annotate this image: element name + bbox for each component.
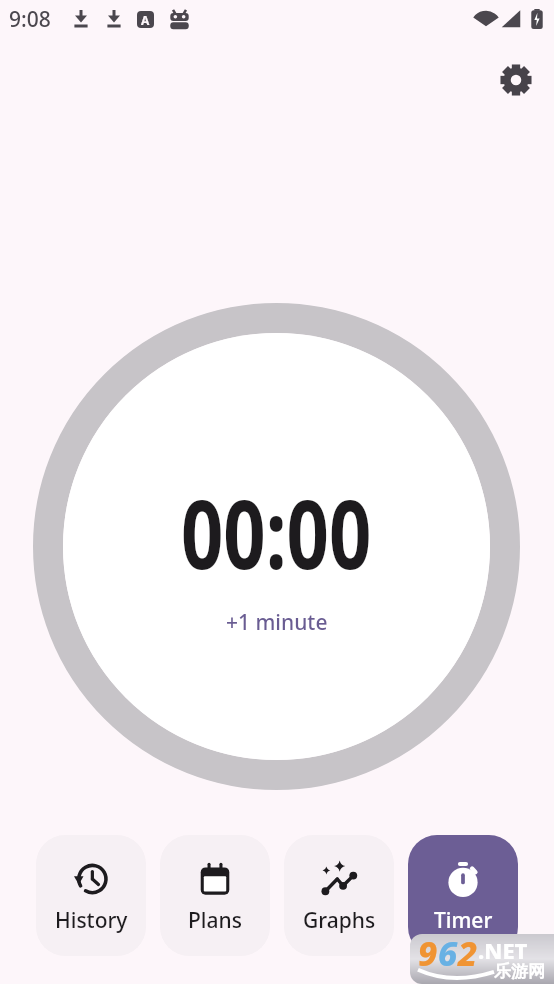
staticText: .NET [478, 935, 528, 965]
staticText: 乐游网 [494, 961, 545, 982]
staticText: 00:00 [181, 467, 372, 596]
staticText: +1 minute [226, 608, 328, 637]
button[interactable]: Plans [160, 835, 270, 956]
staticText: History [55, 906, 128, 935]
button[interactable] [498, 62, 534, 98]
staticText: Timer [434, 906, 493, 935]
staticText: 2 [458, 934, 478, 976]
staticText: A [141, 12, 150, 28]
button[interactable]: Timer [408, 835, 518, 956]
button[interactable]: +1 minute [216, 604, 338, 641]
staticText: Plans [188, 906, 242, 935]
button[interactable]: History [36, 835, 146, 956]
staticText: 9:08 [9, 5, 51, 34]
button[interactable]: Graphs [284, 835, 394, 956]
staticText: 9 [418, 934, 438, 976]
staticText: 6 [438, 934, 458, 976]
staticText: Graphs [303, 906, 376, 935]
